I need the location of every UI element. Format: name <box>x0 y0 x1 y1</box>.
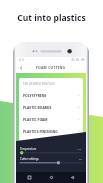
staticText: Temperature <box>20 147 37 151</box>
staticText: PLASTICS FINISHING <box>23 129 58 134</box>
button[interactable]: Temperature <box>20 147 82 155</box>
staticText: PRE-DEFINED PROFILES <box>23 82 55 86</box>
staticText: POLYSTYRENE <box>23 93 47 98</box>
button[interactable]: Back <box>16 62 86 73</box>
button[interactable]: PLASTIC SHEETS <box>19 149 83 161</box>
staticText: 50 <box>79 157 82 160</box>
staticText: Cut into plastics <box>0 12 103 24</box>
button[interactable]: PLASTIC FOAM <box>19 113 83 125</box>
staticText: 170 <box>77 147 82 150</box>
staticText: PLASTIC FOAM <box>23 117 48 122</box>
button[interactable]: POLYSTYRENE <box>19 89 83 101</box>
button[interactable]: PLASTIC BOARDS <box>19 101 83 113</box>
staticText: Cutter settings <box>20 157 39 161</box>
button[interactable]: Home <box>48 174 55 181</box>
staticText: PLASTIC BOARDS <box>23 105 52 110</box>
button[interactable]: PLASTICS FINISHING <box>19 125 83 137</box>
button[interactable]: PLASTIC MOLDING <box>19 137 83 149</box>
staticText: FOAM CUTTING <box>36 65 66 70</box>
button[interactable]: Cutter settings <box>20 157 82 165</box>
staticText: PLASTIC SHEETS <box>23 153 50 158</box>
button[interactable]: Back <box>17 64 25 72</box>
button[interactable]: Back <box>69 174 76 181</box>
button[interactable]: Recents <box>26 174 33 181</box>
